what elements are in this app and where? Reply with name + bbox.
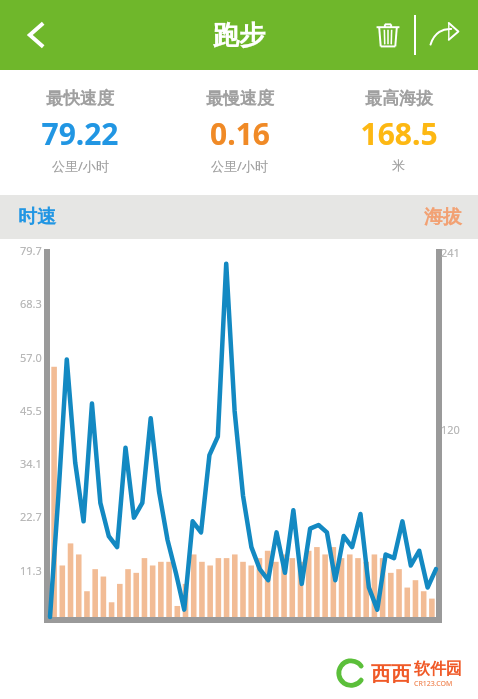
staticText: 22.7 (20, 509, 42, 524)
staticText: 时速 (18, 205, 56, 229)
button[interactable]: 海拔 (424, 195, 462, 239)
staticText: 米 (392, 157, 405, 173)
staticText: 68.3 (20, 296, 42, 311)
staticText: 0.16 (210, 113, 270, 154)
button[interactable]: 时速 (18, 195, 56, 239)
staticText: 最慢速度 (206, 88, 274, 109)
staticText: 57.0 (20, 350, 42, 365)
staticText: 168.5 (360, 113, 438, 154)
staticText: 11.3 (20, 563, 42, 578)
button[interactable]: 最慢速度 (160, 88, 319, 175)
staticText: 公里/小时 (52, 157, 109, 175)
button[interactable]: Delete (362, 9, 414, 61)
staticText: 跑步 (213, 19, 265, 52)
staticText: 34.1 (20, 456, 42, 471)
button[interactable]: Back (10, 9, 62, 61)
staticText: CR123.COM (414, 679, 453, 689)
staticText: 公里/小时 (211, 157, 268, 175)
staticText: 120 (441, 422, 460, 437)
staticText: 海拔 (424, 205, 462, 229)
staticText: 西西 (371, 662, 411, 687)
staticText: 241 (441, 245, 460, 260)
staticText: 79.22 (41, 113, 119, 154)
button[interactable]: Share (416, 7, 472, 63)
staticText: 45.5 (20, 403, 42, 418)
button[interactable]: 最高海拔 (319, 88, 478, 173)
button[interactable]: 最快速度 (0, 88, 160, 175)
staticText: 软件园 (414, 659, 462, 679)
staticText: 79.7 (20, 243, 42, 258)
staticText: 最快速度 (46, 88, 114, 109)
staticText: 最高海拔 (365, 88, 433, 109)
